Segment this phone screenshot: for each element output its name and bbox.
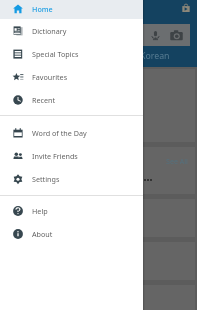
staticText: About bbox=[32, 229, 53, 239]
button[interactable] bbox=[2, 242, 195, 280]
button[interactable]: Word of the Day bbox=[0, 121, 143, 144]
staticText: Korean bbox=[140, 50, 170, 62]
staticText: Favourites bbox=[32, 72, 68, 82]
staticText: Dictionary bbox=[32, 26, 67, 36]
button[interactable] bbox=[2, 69, 195, 142]
button[interactable]: Invite Friends bbox=[0, 144, 143, 167]
staticText: Home bbox=[32, 4, 53, 14]
button[interactable]: Settings bbox=[0, 167, 143, 190]
staticText: Special Topics bbox=[32, 49, 79, 59]
button[interactable] bbox=[2, 285, 195, 310]
button[interactable]: Camera search bbox=[168, 27, 184, 43]
button[interactable]: About bbox=[0, 222, 143, 245]
button[interactable]: Favourites bbox=[0, 65, 143, 88]
button[interactable] bbox=[2, 199, 195, 237]
button[interactable]: Home bbox=[0, 0, 143, 19]
button[interactable]: Special Topics bbox=[0, 42, 143, 65]
button[interactable] bbox=[2, 147, 195, 194]
button[interactable]: Recent bbox=[0, 88, 143, 111]
staticText: Recent bbox=[32, 95, 56, 105]
button[interactable]: See All bbox=[166, 156, 188, 166]
staticText: Invite Friends bbox=[32, 151, 78, 161]
button[interactable]: Play Store bbox=[182, 4, 190, 12]
button[interactable]: Help bbox=[0, 199, 143, 222]
button[interactable]: Dictionary bbox=[0, 19, 143, 42]
staticText: Help bbox=[32, 206, 48, 216]
staticText: Settings bbox=[32, 174, 60, 184]
button[interactable]: Voice search bbox=[149, 29, 162, 42]
staticText: Word of the Day bbox=[32, 128, 87, 138]
button[interactable]: Voice search bbox=[111, 24, 190, 46]
